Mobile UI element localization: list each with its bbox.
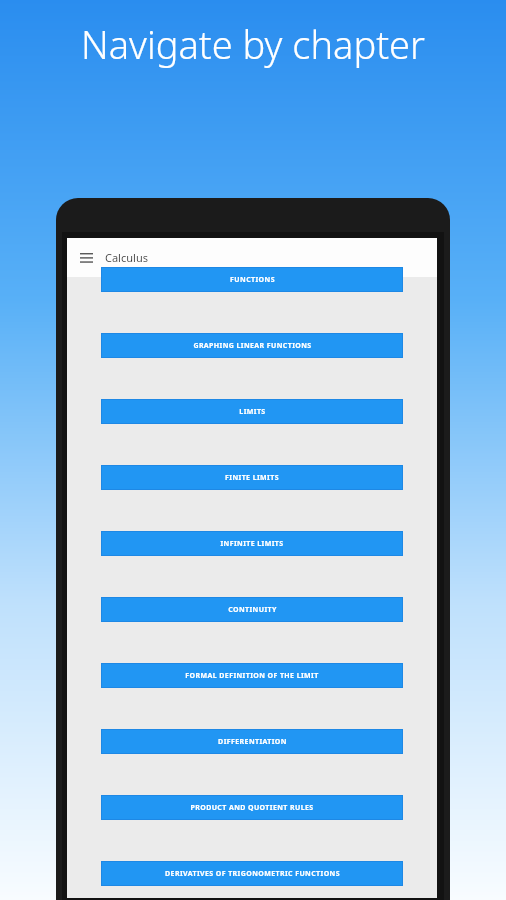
staticText: FINITE LIMITS	[225, 473, 279, 483]
button[interactable]: FINITE LIMITS	[102, 466, 402, 489]
staticText: INFINITE LIMITS	[220, 539, 284, 549]
staticText: FUNCTIONS	[230, 275, 275, 285]
staticText: DERIVATIVES OF TRIGONOMETRIC FUNCTIONS	[165, 869, 340, 879]
button[interactable]: INFINITE LIMITS	[102, 532, 402, 555]
staticText: FORMAL DEFINITION OF THE LIMIT	[185, 671, 319, 681]
button[interactable]: GRAPHING LINEAR FUNCTIONS	[102, 334, 402, 357]
button[interactable]: DIFFERENTIATION	[102, 730, 402, 753]
button[interactable]: DERIVATIVES OF TRIGONOMETRIC FUNCTIONS	[102, 862, 402, 885]
staticText: DIFFERENTIATION	[218, 737, 287, 747]
button[interactable]: FUNCTIONS	[102, 268, 402, 291]
staticText: LIMITS	[239, 407, 266, 417]
button[interactable]: Open navigation menu	[71, 243, 101, 273]
staticText: PRODUCT AND QUOTIENT RULES	[190, 803, 314, 813]
button[interactable]: PRODUCT AND QUOTIENT RULES	[102, 796, 402, 819]
staticText: Calculus	[105, 250, 148, 265]
staticText: Navigate by chapter	[16, 18, 490, 70]
button[interactable]: CONTINUITY	[102, 598, 402, 621]
staticText: CONTINUITY	[228, 605, 277, 615]
button[interactable]: LIMITS	[102, 400, 402, 423]
staticText: GRAPHING LINEAR FUNCTIONS	[193, 341, 312, 351]
button[interactable]: FORMAL DEFINITION OF THE LIMIT	[102, 664, 402, 687]
